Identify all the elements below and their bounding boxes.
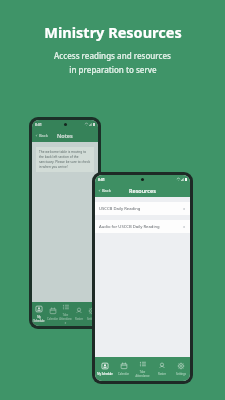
- staticText: Calendar: [118, 372, 129, 376]
- button[interactable]: Settings: [85, 302, 98, 326]
- button[interactable]: USCCB Daily Reading: [95, 202, 190, 215]
- button[interactable]: Settings: [171, 357, 190, 381]
- staticText: 8:01: [35, 122, 42, 127]
- staticText: Calendar: [47, 317, 58, 321]
- staticText: Resources: [129, 187, 156, 194]
- button[interactable]: Audio for USCCB Daily Reading: [95, 220, 190, 233]
- staticText: Back: [39, 133, 48, 138]
- staticText: in preparation to serve: [69, 64, 157, 75]
- button[interactable]: My Schedule: [95, 357, 114, 381]
- button[interactable]: Take Attendance: [133, 357, 152, 381]
- staticText: Notes: [57, 132, 73, 139]
- staticText: Roster: [75, 317, 83, 321]
- button[interactable]: The welcome table is moving to the back …: [36, 147, 94, 172]
- staticText: Roster: [158, 372, 166, 376]
- staticText: Audio for USCCB Daily Reading: [99, 224, 160, 230]
- staticText: 8:01: [98, 177, 105, 182]
- staticText: Access readings and resources: [54, 50, 171, 61]
- staticText: Settings: [87, 317, 97, 321]
- button[interactable]: Take Attendance: [59, 302, 72, 326]
- staticText: USCCB Daily Reading: [99, 206, 141, 212]
- button[interactable]: Roster: [72, 302, 85, 326]
- staticText: The welcome table is moving to the back …: [39, 150, 91, 169]
- staticText: Take Attendance: [59, 313, 72, 325]
- button[interactable]: Calendar: [46, 302, 59, 326]
- staticText: My Schedule: [97, 372, 113, 376]
- button[interactable]: Roster: [152, 357, 171, 381]
- staticText: Ministry Resources: [44, 22, 182, 42]
- button[interactable]: Back: [32, 131, 51, 140]
- staticText: Settings: [176, 372, 186, 376]
- staticText: Back: [102, 188, 111, 193]
- button[interactable]: My Schedule: [32, 302, 46, 326]
- button[interactable]: Back: [95, 186, 114, 195]
- button[interactable]: Calendar: [114, 357, 133, 381]
- staticText: Take Attendance: [133, 370, 152, 378]
- staticText: My Schedule: [32, 315, 46, 323]
